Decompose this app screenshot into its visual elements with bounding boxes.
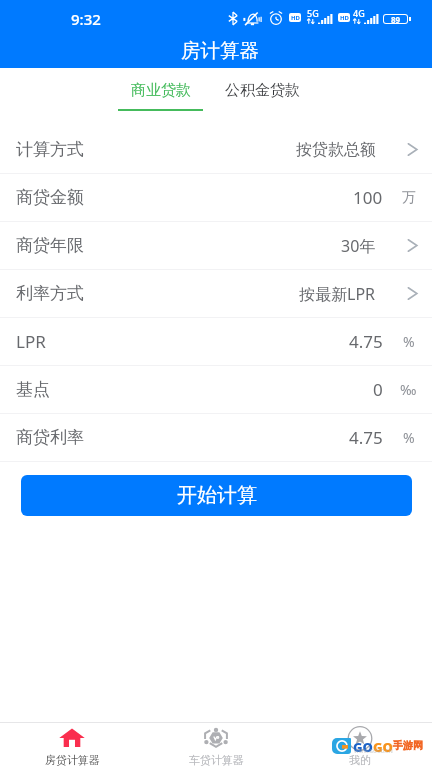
button[interactable]: 车贷计算器 bbox=[144, 722, 288, 767]
staticText: 4.75 bbox=[349, 426, 383, 449]
staticText: 9:32 bbox=[71, 9, 101, 29]
staticText: 我的 bbox=[349, 753, 371, 767]
button[interactable]: 商贷利率 bbox=[0, 414, 432, 461]
staticText: % bbox=[403, 332, 415, 351]
staticText: HD bbox=[340, 14, 349, 22]
button[interactable]: 利率方式 bbox=[0, 270, 432, 317]
staticText: 计算方式 bbox=[16, 139, 84, 160]
staticText: 4.75 bbox=[349, 330, 383, 353]
staticText: WWW.GOGO.CN bbox=[354, 748, 393, 755]
staticText: 开始计算 bbox=[177, 483, 257, 508]
staticText: 0 bbox=[373, 378, 383, 401]
staticText: 商业贷款 bbox=[131, 81, 191, 100]
button[interactable]: 基点 bbox=[0, 366, 432, 413]
staticText: 万 bbox=[402, 189, 416, 207]
button[interactable]: 商业贷款 bbox=[118, 68, 203, 111]
staticText: 按贷款总额 bbox=[296, 140, 376, 160]
staticText: 车贷计算器 bbox=[189, 753, 244, 767]
button[interactable]: 公积金贷款 bbox=[220, 68, 305, 109]
button[interactable]: 计算方式 bbox=[0, 126, 432, 173]
staticText: 100 bbox=[353, 186, 383, 209]
staticText: 4G bbox=[353, 7, 365, 19]
staticText: 30年 bbox=[341, 235, 376, 257]
button[interactable]: 我的 bbox=[288, 722, 432, 767]
staticText: 房贷计算器 bbox=[45, 753, 100, 767]
button[interactable]: 开始计算 bbox=[21, 475, 412, 516]
staticText: LPR bbox=[16, 330, 46, 353]
staticText: 手游网 bbox=[393, 739, 423, 752]
staticText: 按最新LPR bbox=[299, 283, 376, 305]
staticText: 房计算器 bbox=[181, 38, 259, 63]
button[interactable]: LPR bbox=[0, 318, 432, 365]
button[interactable]: 商贷年限 bbox=[0, 222, 432, 269]
staticText: ‰ bbox=[400, 380, 417, 399]
staticText: GO bbox=[373, 738, 393, 755]
staticText: 基点 bbox=[16, 379, 50, 400]
button[interactable]: 房贷计算器 bbox=[0, 722, 144, 767]
staticText: GO bbox=[353, 738, 373, 755]
staticText: HD bbox=[291, 14, 300, 22]
button[interactable]: 商贷金额 bbox=[0, 174, 432, 221]
staticText: 公积金贷款 bbox=[225, 81, 300, 100]
staticText: 5G bbox=[307, 7, 319, 19]
staticText: % bbox=[403, 428, 415, 447]
staticText: 商贷年限 bbox=[16, 235, 84, 256]
staticText: 89 bbox=[391, 14, 401, 25]
staticText: 商贷利率 bbox=[16, 427, 84, 448]
staticText: 利率方式 bbox=[16, 283, 84, 304]
staticText: 商贷金额 bbox=[16, 187, 84, 208]
